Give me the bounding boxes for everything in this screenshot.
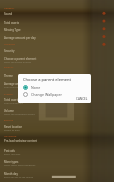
button[interactable]: Reset location: [0, 125, 114, 130]
staticText: Average amount per day: [4, 36, 36, 40]
staticText: None: [31, 85, 41, 90]
button[interactable]: Average amount: [0, 82, 114, 87]
button[interactable]: Average amount per day: [0, 36, 114, 41]
staticText: Theme: [4, 74, 13, 78]
staticText: Choose a parent element: [23, 77, 72, 82]
staticText: More types: [4, 160, 19, 164]
staticText: Month day: [4, 172, 18, 176]
button[interactable]: Missing Type: [0, 28, 114, 33]
button[interactable]: Change Wallpaper: [18, 91, 91, 98]
staticText: ADVANCED: [4, 135, 17, 138]
staticText: Missing Type: [4, 28, 21, 32]
staticText: Choose a parent element: [4, 57, 37, 61]
staticText: Pre-load webview content: [4, 139, 38, 143]
button[interactable]: None: [18, 84, 91, 91]
button[interactable]: Volume: [0, 109, 114, 114]
staticText: ACCOUNT: [4, 43, 16, 46]
staticText: CANCEL: [76, 97, 88, 101]
button[interactable]: Choose a parent element: [0, 57, 114, 62]
staticText: Resets all data: [4, 129, 20, 132]
staticText: Security: [4, 49, 15, 53]
button[interactable]: Theme: [0, 74, 114, 79]
staticText: Volume: [4, 109, 14, 113]
staticText: Sound: [4, 12, 13, 16]
button[interactable]: Total assets: [0, 98, 114, 103]
button[interactable]: CANCEL: [76, 97, 91, 103]
staticText: Select the screen bounds: [4, 61, 31, 64]
staticText: Select major asset categories: [4, 164, 36, 167]
staticText: Average amount: [4, 82, 26, 86]
staticText: Sum of all entries: [4, 102, 23, 105]
staticText: Total assets: [4, 98, 19, 102]
button[interactable]: Pre-load webview content: [0, 139, 114, 144]
staticText: SYSTEM: [4, 93, 13, 96]
button[interactable]: Security: [0, 49, 114, 54]
staticText: Post ads: [4, 149, 15, 153]
staticText: Sum of all values: [4, 86, 23, 89]
staticText: Change Wallpaper: [31, 92, 62, 97]
staticText: Total assets: [4, 21, 19, 25]
button[interactable]: Month day: [0, 172, 114, 177]
staticText: DISPLAY: [4, 66, 14, 69]
staticText: Select the notification sound: [4, 113, 35, 116]
button[interactable]: Total assets: [0, 21, 114, 26]
staticText: BACKUP: [4, 119, 14, 122]
staticText: Every 5th day of the month: [4, 176, 34, 179]
staticText: Every 10th visit: [4, 153, 21, 156]
button[interactable]: Sound: [0, 12, 114, 17]
staticText: Reset location: [4, 125, 23, 129]
button[interactable]: More types: [0, 160, 114, 165]
staticText: GENERAL: [4, 7, 15, 10]
button[interactable]: Post ads: [0, 149, 114, 154]
